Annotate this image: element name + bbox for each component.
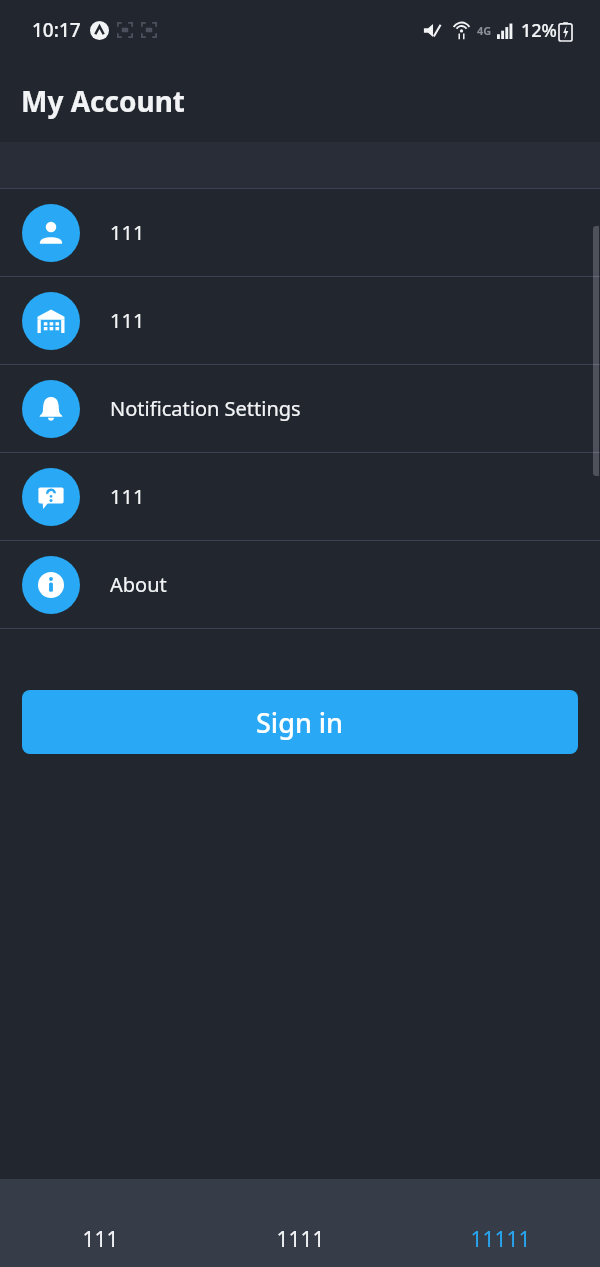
staticText: 111: [110, 307, 145, 334]
staticText: About: [110, 571, 167, 598]
button[interactable]: 111: [0, 1179, 200, 1267]
staticText: My Account: [21, 82, 185, 120]
staticText: 4G: [477, 23, 492, 38]
button[interactable]: 1111: [200, 1179, 400, 1267]
button[interactable]: Profile: [0, 189, 600, 276]
button[interactable]: Sign in: [22, 690, 578, 754]
staticText: 12%: [521, 18, 557, 43]
staticText: 11111: [470, 1225, 531, 1254]
staticText: 111: [110, 483, 145, 510]
staticText: 1111: [276, 1225, 325, 1254]
staticText: 111: [82, 1225, 119, 1254]
staticText: Sign in: [256, 704, 344, 741]
button[interactable]: Stores: [0, 277, 600, 364]
staticText: Notification Settings: [110, 395, 301, 422]
staticText: 111: [110, 219, 145, 246]
button[interactable]: Help: [0, 453, 600, 540]
button[interactable]: About: [0, 541, 600, 628]
button[interactable]: 11111: [400, 1179, 600, 1267]
staticText: 10:17: [32, 17, 81, 43]
button[interactable]: Notification Settings: [0, 365, 600, 452]
